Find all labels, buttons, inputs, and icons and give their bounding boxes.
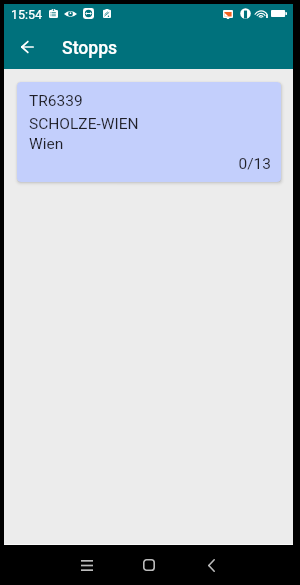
button[interactable]: TR6339 (17, 82, 281, 182)
staticText: 15:54 (11, 7, 43, 22)
staticText: TR6339 (29, 92, 269, 110)
staticText: SCHOLZE-WIEN (29, 115, 269, 133)
staticText: 0/13 (31, 155, 271, 173)
button[interactable]: Back (191, 545, 231, 585)
button[interactable]: Navigate up (6, 26, 48, 68)
button[interactable]: Home (129, 545, 169, 585)
staticText: Stopps (62, 38, 118, 59)
staticText: Wien (29, 135, 269, 153)
button[interactable]: Recent apps (67, 545, 107, 585)
